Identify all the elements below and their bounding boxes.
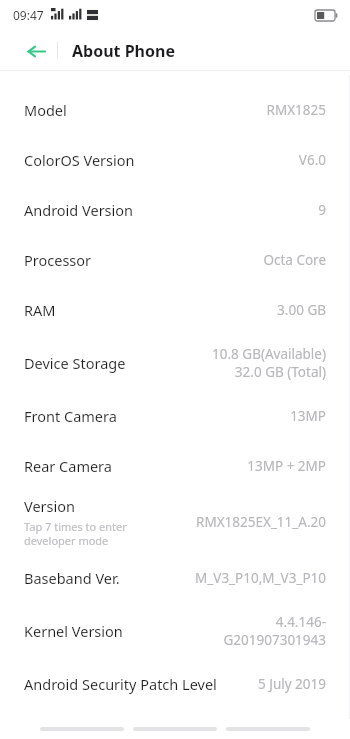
staticText: Version: [24, 496, 75, 516]
staticText: Android Version: [24, 200, 134, 220]
staticText: Model: [24, 100, 67, 120]
staticText: RMX1825EX_11_A.20: [196, 513, 326, 531]
button[interactable]: RAM: [0, 285, 350, 335]
staticText: Tap 7 times to enter developer mode: [24, 519, 127, 548]
staticText: 5 July 2019: [257, 675, 326, 693]
staticText: M_V3_P10,M_V3_P10: [195, 569, 326, 587]
staticText: 3.00 GB: [277, 301, 326, 319]
button[interactable]: Device Storage: [0, 335, 350, 391]
staticText: Baseband Ver.: [24, 568, 120, 588]
staticText: 13MP: [290, 407, 326, 425]
button[interactable]: Baseband Ver.: [0, 553, 350, 603]
staticText: 9: [318, 201, 326, 219]
staticText: Front Camera: [24, 406, 117, 426]
button[interactable]: Front Camera: [0, 391, 350, 441]
button[interactable]: Model: [0, 85, 350, 135]
button[interactable]: Back: [20, 35, 52, 67]
staticText: RMX1825: [266, 101, 326, 119]
staticText: V6.0: [298, 151, 326, 169]
button[interactable]: ColorOS Version: [0, 135, 350, 185]
button[interactable]: Kernel Version: [0, 603, 350, 659]
staticText: 4.4.146- G201907301943: [223, 613, 326, 649]
staticText: About Phone: [72, 40, 175, 62]
staticText: Rear Camera: [24, 456, 112, 476]
staticText: 13MP + 2MP: [247, 457, 326, 475]
staticText: Octa Core: [263, 251, 326, 269]
button[interactable]: Rear Camera: [0, 441, 350, 491]
staticText: Processor: [24, 250, 92, 270]
staticText: Android Security Patch Level: [24, 674, 217, 694]
staticText: Device Storage: [24, 353, 126, 373]
button[interactable]: Android Security Patch Level: [0, 659, 350, 709]
staticText: ColorOS Version: [24, 150, 135, 170]
staticText: Kernel Version: [24, 621, 123, 641]
button[interactable]: Processor: [0, 235, 350, 285]
button[interactable]: Android Version: [0, 185, 350, 235]
staticText: 10.8 GB(Available) 32.0 GB (Total): [212, 345, 326, 381]
button[interactable]: Version: [0, 491, 350, 553]
staticText: RAM: [24, 300, 56, 320]
staticText: 09:47: [13, 7, 44, 23]
